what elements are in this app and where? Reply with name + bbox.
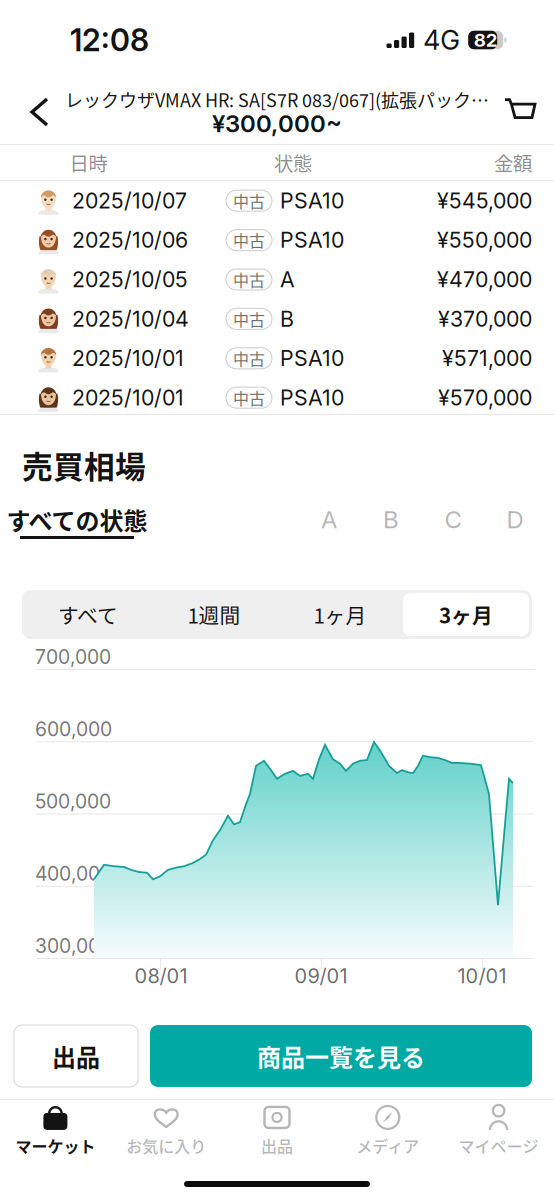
staticText: レックウザVMAX HR: SA[S7R 083/067](拡張パック 「蒼空ス… bbox=[65, 86, 489, 113]
button[interactable]: B bbox=[360, 503, 422, 559]
staticText: メディア bbox=[356, 1134, 419, 1157]
staticText: 日時 bbox=[69, 148, 107, 176]
staticText: 中古 bbox=[233, 307, 265, 330]
staticText: 2025/10/01 bbox=[72, 385, 184, 411]
staticText: PSA10 bbox=[280, 227, 344, 253]
staticText: 82 bbox=[474, 29, 498, 51]
staticText: B bbox=[280, 306, 294, 332]
staticText: C bbox=[444, 505, 461, 534]
button[interactable]: 2025/10/01 bbox=[0, 339, 554, 378]
staticText: ¥470,000 bbox=[437, 267, 532, 292]
staticText: 2025/10/07 bbox=[72, 188, 187, 214]
staticText: A bbox=[280, 267, 295, 292]
staticText: 500,000 bbox=[35, 790, 111, 813]
button[interactable]: お気に入り bbox=[111, 1100, 222, 1162]
staticText: ¥570,000 bbox=[438, 385, 532, 411]
staticText: 10/01 bbox=[457, 964, 506, 988]
staticText: お気に入り bbox=[126, 1134, 206, 1157]
button[interactable]: D bbox=[484, 503, 546, 559]
staticText: 09/01 bbox=[294, 964, 347, 988]
button[interactable]: Cart bbox=[489, 82, 554, 142]
staticText: マーケット bbox=[15, 1134, 95, 1157]
staticText: 2025/10/06 bbox=[72, 227, 188, 253]
staticText: 400,000 bbox=[35, 862, 112, 885]
staticText: 中古 bbox=[233, 386, 265, 409]
staticText: 1週間 bbox=[187, 599, 240, 629]
staticText: 出品 bbox=[52, 1039, 100, 1073]
staticText: ¥370,000 bbox=[438, 306, 532, 332]
button[interactable]: 2025/10/07 bbox=[0, 181, 554, 220]
button[interactable]: 2025/10/01 bbox=[0, 378, 554, 417]
staticText: すべて bbox=[58, 599, 118, 629]
staticText: 700,000 bbox=[35, 645, 111, 669]
button[interactable]: 出品 bbox=[14, 1025, 138, 1087]
button[interactable]: 1週間 bbox=[151, 593, 277, 636]
staticText: A bbox=[321, 505, 337, 534]
staticText: ¥550,000 bbox=[437, 227, 532, 253]
button[interactable]: 2025/10/06 bbox=[0, 220, 554, 260]
button[interactable]: 出品 bbox=[222, 1100, 332, 1162]
staticText: ¥571,000 bbox=[442, 345, 532, 371]
button[interactable]: 1ヶ月 bbox=[277, 593, 403, 636]
staticText: 状態 bbox=[274, 148, 312, 176]
staticText: PSA10 bbox=[280, 188, 344, 214]
staticText: 2025/10/04 bbox=[72, 306, 189, 332]
staticText: 1ヶ月 bbox=[313, 599, 366, 629]
button[interactable]: Back bbox=[0, 81, 67, 143]
staticText: 中古 bbox=[233, 189, 265, 212]
button[interactable]: すべて bbox=[25, 593, 151, 636]
button[interactable]: 2025/10/04 bbox=[0, 299, 554, 339]
staticText: 中古 bbox=[233, 228, 265, 252]
button[interactable]: マイページ bbox=[443, 1100, 554, 1162]
button[interactable]: 3ヶ月 bbox=[403, 593, 529, 636]
staticText: 300,000 bbox=[35, 934, 112, 958]
button[interactable]: A bbox=[298, 503, 360, 559]
staticText: 中古 bbox=[233, 268, 265, 291]
button[interactable]: メディア bbox=[332, 1100, 443, 1162]
staticText: 12:08 bbox=[70, 21, 149, 58]
staticText: PSA10 bbox=[280, 345, 344, 371]
staticText: 600,000 bbox=[35, 718, 112, 741]
staticText: D bbox=[506, 505, 523, 534]
staticText: 商品一覧を見る bbox=[257, 1039, 425, 1073]
button[interactable]: C bbox=[422, 503, 484, 559]
button[interactable]: 商品一覧を見る bbox=[150, 1025, 532, 1087]
staticText: B bbox=[383, 505, 399, 534]
staticText: 2025/10/05 bbox=[72, 267, 188, 292]
button[interactable]: マーケット bbox=[0, 1100, 111, 1162]
staticText: 3ヶ月 bbox=[439, 599, 493, 629]
staticText: 08/01 bbox=[134, 964, 187, 988]
staticText: マイページ bbox=[459, 1134, 539, 1157]
button[interactable]: 2025/10/05 bbox=[0, 260, 554, 299]
staticText: ¥300,000~ bbox=[212, 109, 342, 138]
staticText: 中古 bbox=[233, 347, 265, 370]
staticText: 2025/10/01 bbox=[72, 345, 184, 371]
staticText: すべての状態 bbox=[6, 502, 147, 537]
staticText: 4G bbox=[423, 24, 460, 56]
staticText: PSA10 bbox=[280, 385, 344, 411]
staticText: 出品 bbox=[261, 1134, 293, 1157]
button[interactable]: すべての状態 bbox=[0, 503, 134, 559]
staticText: ¥545,000 bbox=[437, 188, 532, 214]
staticText: 金額 bbox=[494, 148, 532, 176]
staticText: 売買相場 bbox=[22, 443, 146, 487]
